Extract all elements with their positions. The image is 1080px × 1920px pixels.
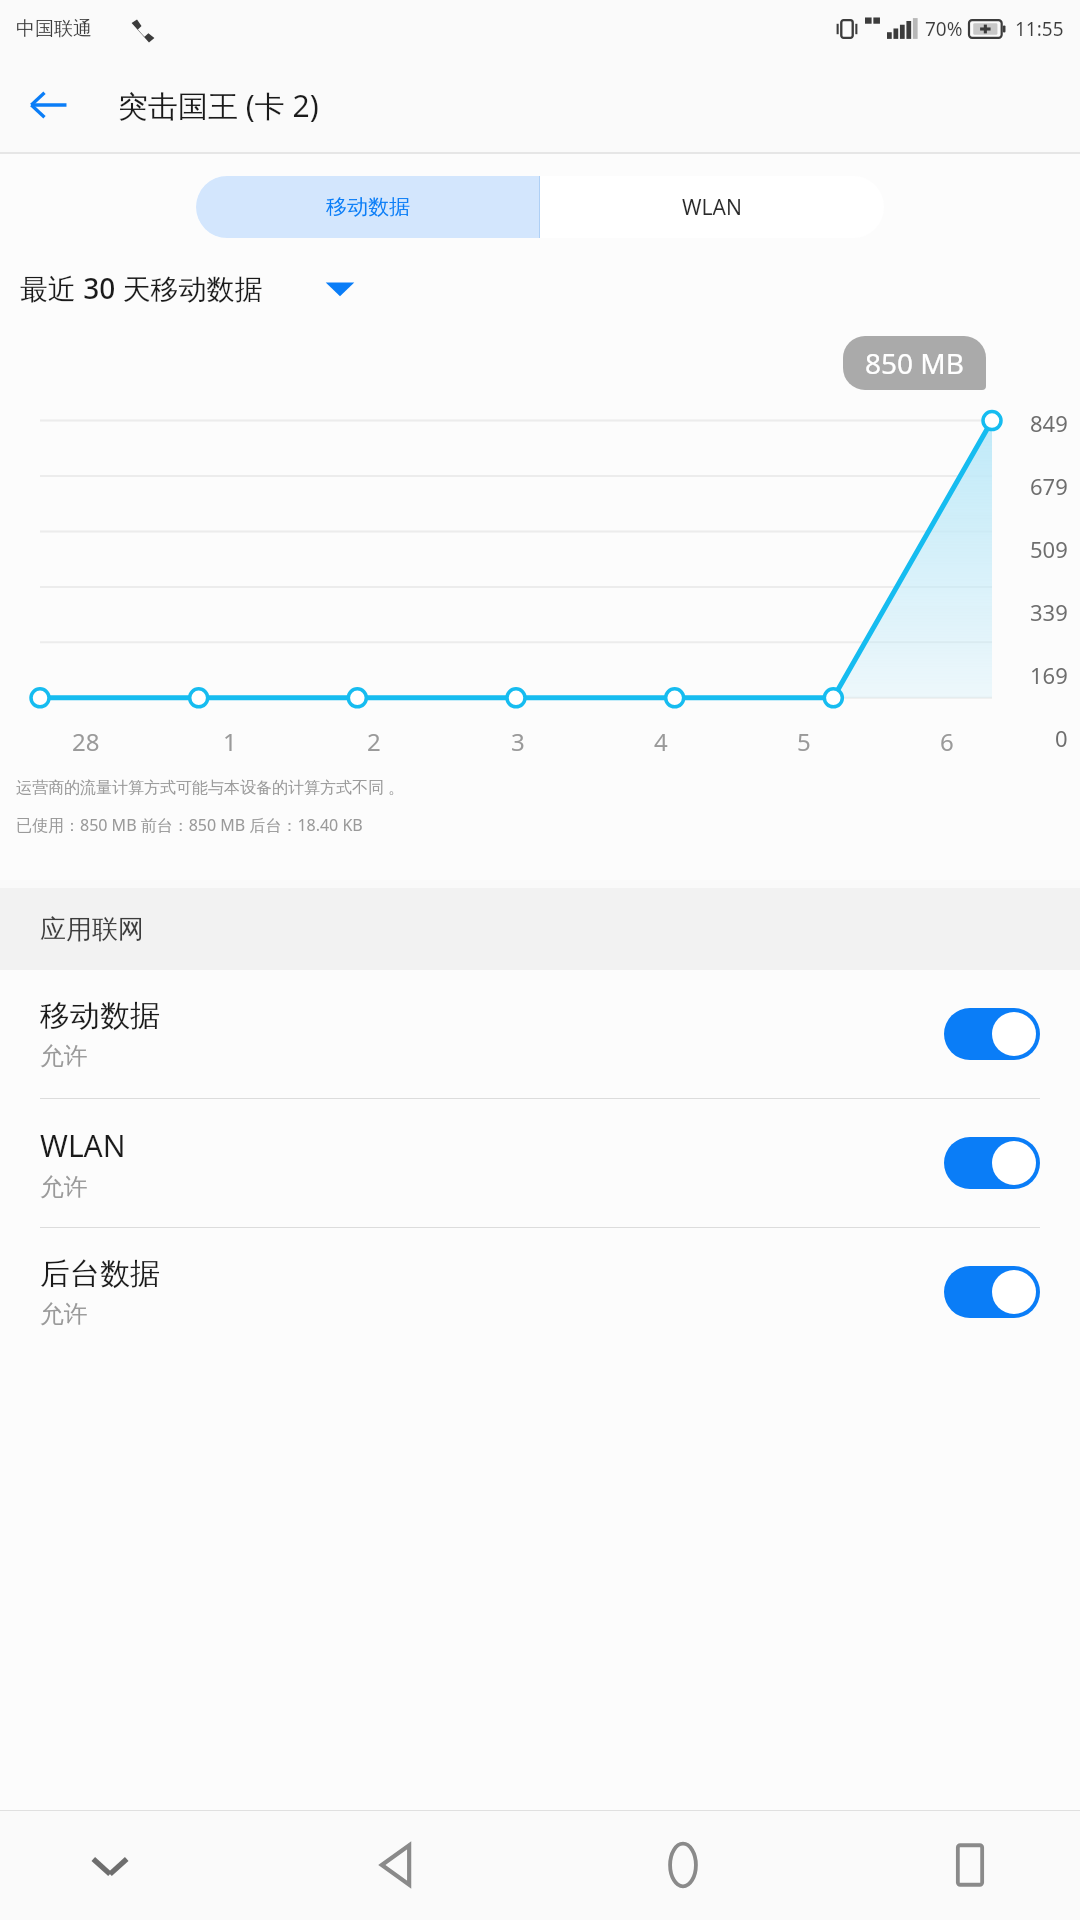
staticText: WLAN [682,193,742,222]
staticText: 4 [654,725,668,758]
staticText: 2 [367,725,381,758]
staticText: 允许 [40,1041,88,1071]
staticText: 3 [511,725,525,758]
button[interactable]: Hide keyboard [60,1815,160,1915]
button[interactable]: WLAN [0,1099,1080,1227]
staticText: 70% [925,16,963,42]
button[interactable]: 移动数据 [944,1008,1040,1060]
staticText: 5 [797,725,811,758]
staticText: 中国联通 [16,17,92,41]
staticText: 850 MB [865,344,964,382]
staticText: 后台数据 [40,1255,160,1293]
staticText: 6 [940,725,954,758]
staticText: 11:55 [1015,16,1064,42]
staticText: 679 [1030,471,1068,501]
button[interactable]: WLAN [944,1137,1040,1189]
staticText: 移动数据 [326,194,410,220]
staticText: 0 [1055,723,1068,753]
staticText: 28 [72,725,100,758]
staticText: 1 [223,725,237,758]
staticText: 应用联网 [40,913,144,946]
staticText: 339 [1030,597,1068,627]
button[interactable]: Back [347,1815,447,1915]
button[interactable]: 移动数据 [196,176,539,238]
staticText: WLAN [40,1125,126,1166]
button[interactable]: 后台数据 [944,1266,1040,1318]
staticText: 允许 [40,1172,88,1202]
staticText: 已使用：850 MB 前台：850 MB 后台：18.40 KB [16,814,363,836]
staticText: 509 [1030,534,1068,564]
staticText: 运营商的流量计算方式可能与本设备的计算方式不同 。 [16,776,405,798]
staticText: 突击国王 (卡 2) [118,85,319,126]
staticText: 最近 30 天移动数据 [20,269,263,307]
staticText: 允许 [40,1299,88,1329]
button[interactable]: WLAN [540,176,884,238]
button[interactable]: 后台数据 [0,1228,1080,1356]
button[interactable]: Back [20,77,76,133]
button[interactable]: 移动数据 [0,970,1080,1098]
staticText: 移动数据 [40,997,160,1035]
staticText: 849 [1030,408,1068,438]
button[interactable]: Home [633,1815,733,1915]
staticText: 169 [1030,660,1068,690]
button[interactable]: 最近 30 天移动数据 [20,260,1080,316]
button[interactable]: Recents [920,1815,1020,1915]
